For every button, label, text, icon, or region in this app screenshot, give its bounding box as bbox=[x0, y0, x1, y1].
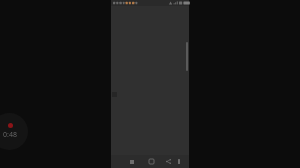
button[interactable]: Share bbox=[162, 155, 175, 168]
button[interactable]: Recents bbox=[125, 155, 138, 168]
button[interactable]: More options bbox=[172, 155, 185, 168]
button[interactable]: Stop screen recording bbox=[0, 113, 28, 150]
staticText: 0:48 bbox=[3, 130, 17, 140]
button[interactable]: Home bbox=[145, 155, 158, 168]
